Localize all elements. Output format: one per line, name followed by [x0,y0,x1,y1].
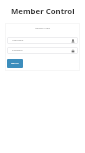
staticText: Member Control [11,6,75,17]
button[interactable]: Password [7,47,78,54]
staticText: Sign In [11,62,19,65]
staticText: Username [12,39,24,42]
button[interactable]: Username [7,37,78,44]
button[interactable]: Sign In [7,59,23,68]
staticText: Member Login [35,27,51,30]
other: Password [71,49,75,53]
staticText: Password [12,49,23,52]
other: User [71,39,75,43]
